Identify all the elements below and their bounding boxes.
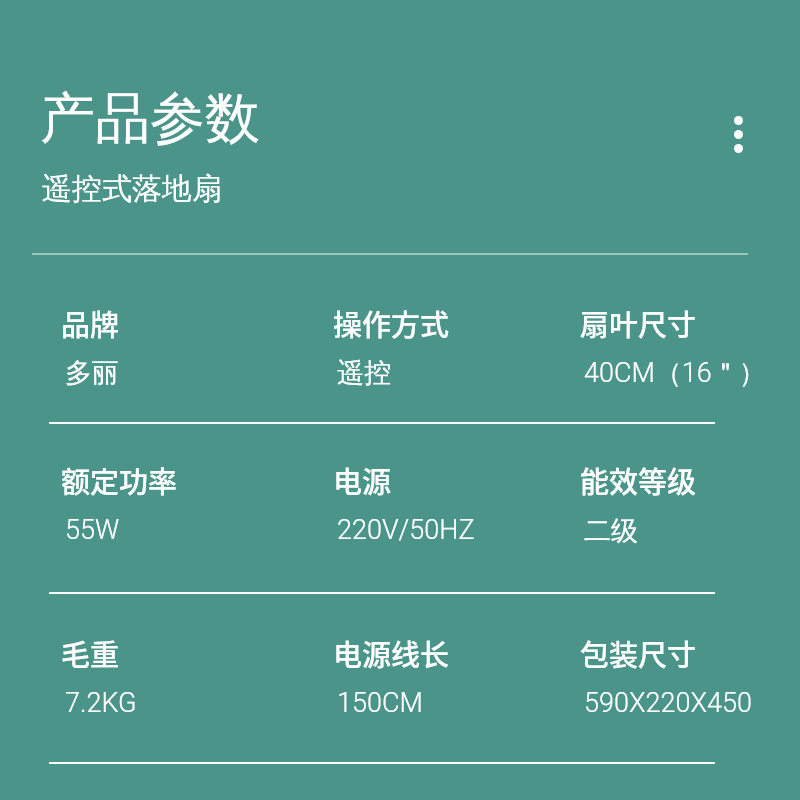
button[interactable]: 操作方式	[321, 292, 561, 390]
button[interactable]: 电源线长	[321, 622, 561, 720]
staticText: 150CM	[337, 687, 423, 719]
button[interactable]: 毛重	[49, 622, 299, 720]
staticText: 590X220X450	[584, 687, 752, 719]
staticText: 电源线长	[333, 632, 450, 674]
staticText: 7.2KG	[65, 687, 137, 719]
button[interactable]: 包装尺寸	[568, 622, 758, 720]
staticText: 产品参数	[40, 84, 260, 153]
button[interactable]: 额定功率	[49, 449, 299, 547]
staticText: 品牌	[61, 302, 120, 344]
staticText: 55W	[65, 514, 120, 546]
button[interactable]: 扇叶尺寸	[568, 292, 758, 390]
staticText: 扇叶尺寸	[580, 302, 697, 344]
staticText: 遥控式落地扇	[42, 170, 222, 208]
staticText: 遥控	[337, 356, 391, 390]
button[interactable]: More options	[714, 116, 762, 164]
button[interactable]: 品牌	[49, 292, 299, 390]
staticText: 二级	[584, 514, 638, 548]
staticText: 包装尺寸	[580, 632, 697, 674]
staticText: 220V/50HZ	[337, 514, 475, 546]
staticText: 电源	[333, 459, 392, 501]
staticText: 毛重	[61, 632, 120, 674]
staticText: 多丽	[65, 356, 119, 390]
staticText: 额定功率	[61, 459, 178, 501]
staticText: 能效等级	[580, 459, 697, 501]
button[interactable]: 能效等级	[568, 449, 758, 547]
staticText: 操作方式	[333, 302, 450, 344]
button[interactable]: 电源	[321, 449, 561, 547]
staticText: 40CM（16＂）	[584, 356, 766, 390]
